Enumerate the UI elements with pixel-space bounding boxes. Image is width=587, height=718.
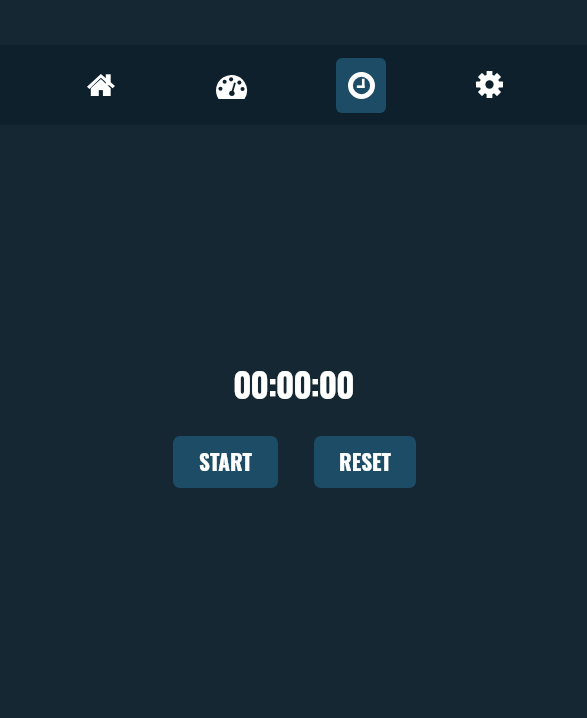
staticText: START bbox=[199, 446, 252, 477]
button[interactable]: START bbox=[173, 436, 278, 488]
button[interactable]: RESET bbox=[314, 436, 416, 488]
button[interactable]: Settings bbox=[464, 58, 514, 113]
button[interactable]: Dashboard bbox=[206, 58, 256, 113]
staticText: RESET bbox=[339, 446, 391, 477]
staticText: 00:00:00 bbox=[233, 358, 354, 408]
button[interactable]: Home bbox=[76, 58, 126, 113]
button[interactable]: Timer bbox=[336, 58, 386, 113]
